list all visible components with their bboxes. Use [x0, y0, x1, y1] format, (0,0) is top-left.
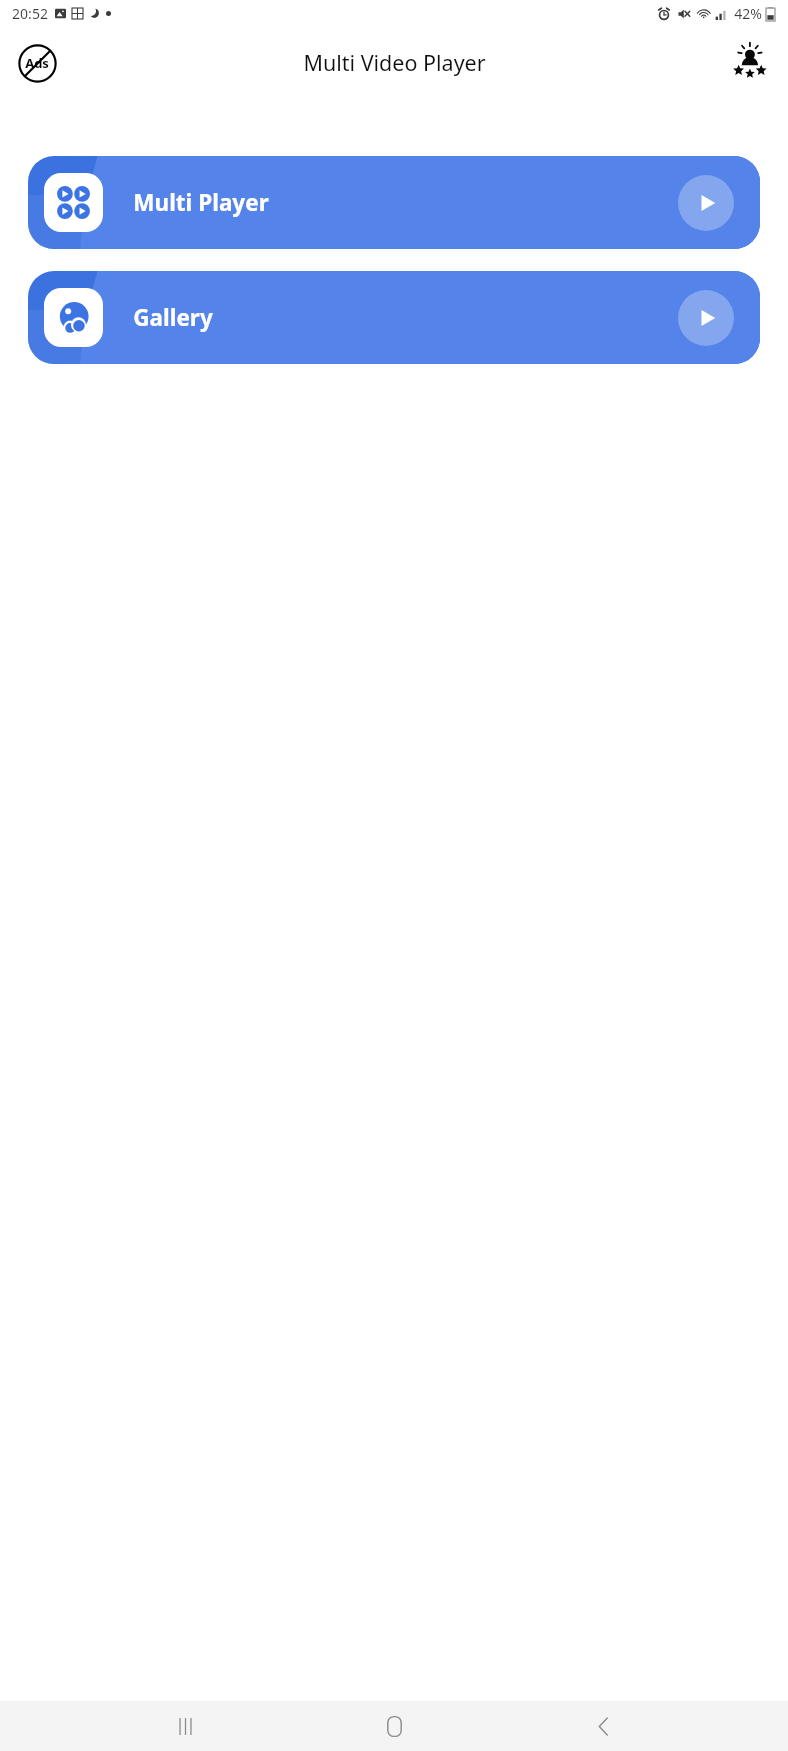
- button[interactable]: Home: [370, 1702, 418, 1750]
- button[interactable]: Gallery: [28, 271, 760, 364]
- button[interactable]: Open Gallery: [678, 290, 734, 346]
- button[interactable]: Open Multi Player: [678, 175, 734, 231]
- button[interactable]: Back: [579, 1702, 627, 1750]
- staticText: 42%: [734, 4, 762, 23]
- staticText: Multi Player: [133, 187, 269, 218]
- button[interactable]: Remove ads: [12, 38, 62, 88]
- button[interactable]: Multi Player: [28, 156, 760, 249]
- staticText: Ads: [25, 54, 49, 72]
- staticText: Multi Video Player: [303, 48, 486, 77]
- staticText: Gallery: [133, 302, 213, 333]
- staticText: 20:52: [12, 4, 48, 23]
- button[interactable]: Rate us: [720, 35, 776, 91]
- button[interactable]: Recents: [161, 1702, 209, 1750]
